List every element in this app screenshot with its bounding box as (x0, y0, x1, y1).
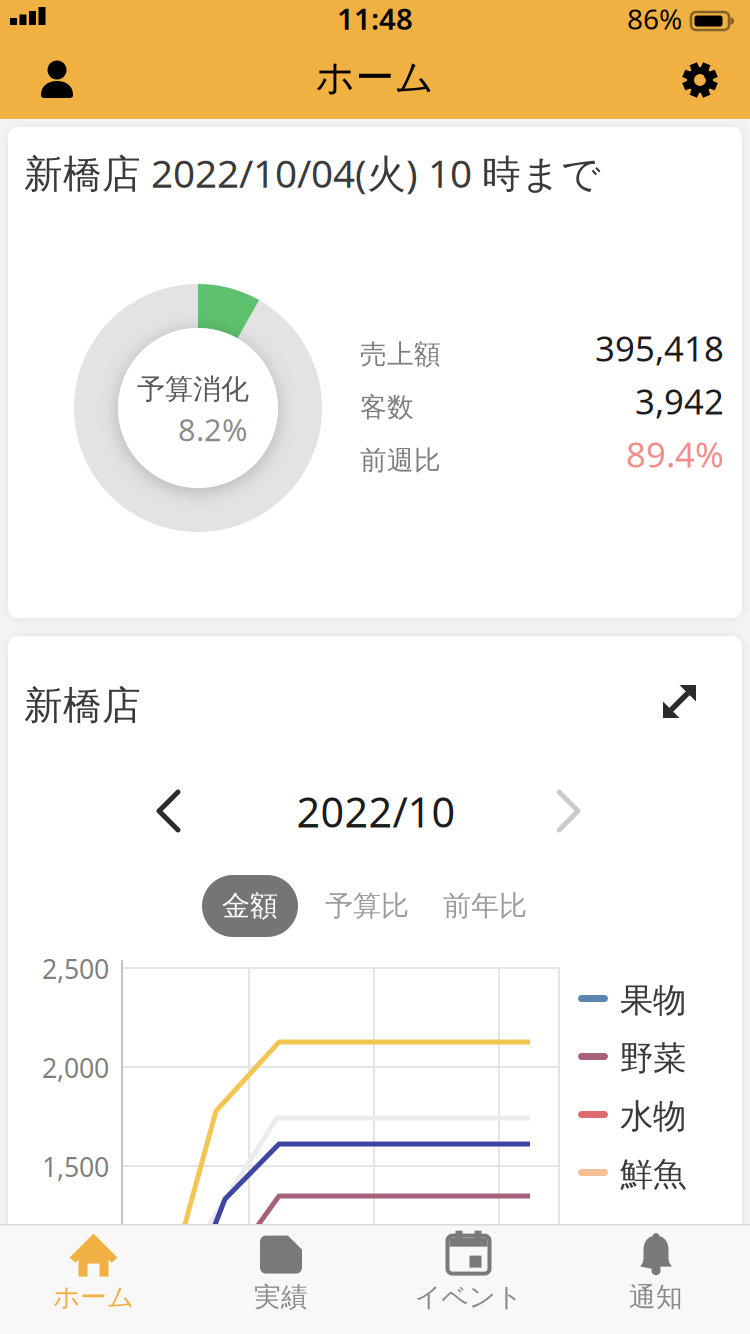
staticText: 89.4% (626, 431, 724, 477)
button[interactable]: 予算比 (297, 875, 437, 937)
staticText: ホーム (315, 54, 434, 101)
staticText: 2022/10 (296, 784, 455, 839)
button[interactable]: 設定 (678, 58, 722, 102)
button[interactable]: 拡大 (663, 685, 696, 718)
staticText: 前年比 (443, 889, 527, 923)
button[interactable]: アカウント (36, 54, 80, 98)
staticText: 新橋店 2022/10/04(火) 10 時まで (24, 147, 601, 198)
staticText: 2,500 (42, 951, 109, 986)
button[interactable]: 前年比 (415, 875, 555, 937)
button[interactable]: 次の月 (559, 792, 581, 832)
staticText: 予算消化 (137, 372, 249, 406)
staticText: ホーム (53, 1281, 134, 1313)
staticText: 395,418 (595, 325, 724, 371)
staticText: 1,500 (42, 1149, 109, 1184)
staticText: 売上額 (360, 338, 441, 371)
staticText: 鮮魚 (620, 1154, 686, 1195)
staticText: 金額 (222, 889, 278, 923)
staticText: 通知 (629, 1281, 683, 1313)
staticText: 実績 (254, 1281, 308, 1313)
button[interactable]: 金額 (202, 875, 298, 937)
staticText: 86% (627, 0, 682, 37)
button[interactable]: イベント (375, 1221, 562, 1323)
staticText: 予算比 (325, 889, 409, 923)
staticText: 11:48 (337, 0, 413, 38)
button[interactable]: ホーム (0, 1221, 187, 1323)
staticText: 3,942 (635, 378, 724, 424)
button[interactable]: 前の月 (159, 792, 181, 832)
staticText: 前週比 (360, 444, 441, 477)
staticText: 8.2% (178, 409, 247, 450)
button[interactable]: 通知 (562, 1221, 749, 1323)
staticText: 水物 (620, 1096, 686, 1137)
staticText: イベント (414, 1281, 522, 1313)
button[interactable]: 実績 (187, 1221, 374, 1323)
staticText: 野菜 (620, 1038, 686, 1079)
staticText: 2,000 (42, 1050, 109, 1085)
staticText: 果物 (620, 980, 686, 1021)
staticText: 客数 (360, 391, 414, 424)
staticText: 新橋店 (24, 682, 141, 729)
